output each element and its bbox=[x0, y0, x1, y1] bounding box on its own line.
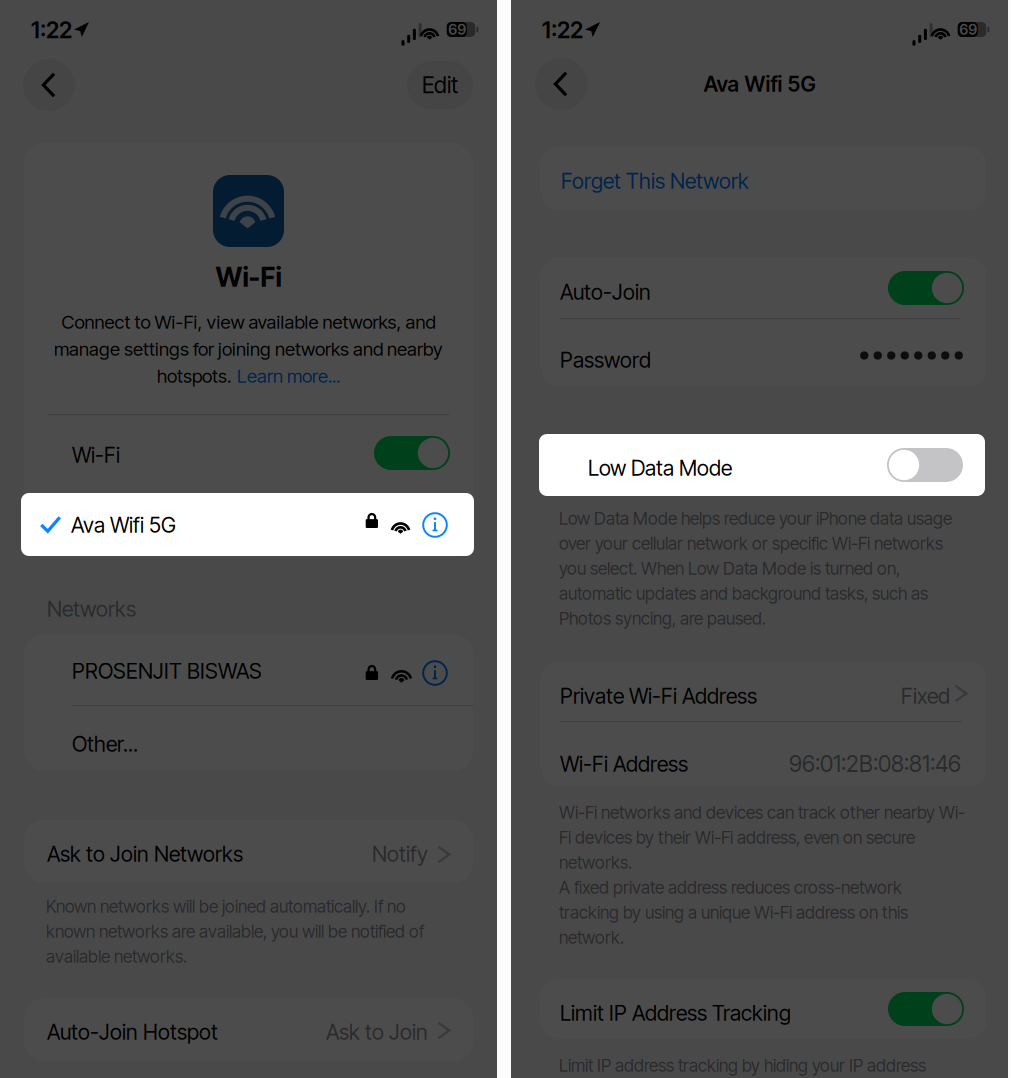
staticText: Learn more... bbox=[237, 365, 340, 387]
staticText: Private Wi-Fi Address bbox=[560, 683, 757, 709]
staticText: 1:22 bbox=[31, 16, 72, 44]
button[interactable]: Edit bbox=[407, 61, 473, 109]
staticText: 69 bbox=[959, 21, 977, 38]
staticText: 96:01:2B:08:81:46 bbox=[789, 750, 961, 777]
staticText: Wi-Fi bbox=[72, 442, 120, 468]
staticText: Notify bbox=[372, 841, 428, 867]
staticText: Forget This Network bbox=[561, 168, 749, 194]
button[interactable]: Back bbox=[535, 58, 587, 110]
staticText: Fixed bbox=[901, 683, 950, 709]
staticText: Wi-Fi networks and devices can track oth… bbox=[559, 802, 965, 873]
staticText: PROSENJIT BISWAS bbox=[72, 658, 262, 684]
staticText: Ask to Join Networks bbox=[47, 841, 243, 867]
staticText: Wi-Fi bbox=[215, 261, 281, 293]
staticText: Password bbox=[560, 347, 651, 373]
staticText: Ava Wifi 5G bbox=[71, 512, 176, 538]
staticText: Auto-Join bbox=[560, 279, 651, 305]
staticText: Other... bbox=[72, 731, 138, 757]
button[interactable]: Forget This Network bbox=[540, 146, 987, 210]
staticText: Networks bbox=[47, 596, 136, 622]
staticText: Ava Wifi 5G bbox=[703, 71, 815, 97]
staticText: Ask to Join bbox=[326, 1019, 428, 1045]
staticText: Limit IP Address Tracking bbox=[560, 1000, 791, 1026]
button[interactable]: Back bbox=[23, 59, 75, 111]
staticText: Wi-Fi Address bbox=[560, 751, 688, 777]
staticText: Auto-Join Hotspot bbox=[47, 1019, 218, 1045]
staticText: A fixed private address reduces cross-ne… bbox=[559, 877, 908, 948]
staticText: Connect to Wi-Fi, view available network… bbox=[61, 311, 435, 333]
staticText: hotspots. bbox=[157, 365, 231, 387]
staticText: 69 bbox=[448, 21, 466, 38]
staticText: Low Data Mode bbox=[588, 455, 732, 481]
staticText: 1:22 bbox=[542, 16, 583, 44]
staticText: manage settings for joining networks and… bbox=[54, 338, 443, 360]
staticText: Limit IP address tracking by hiding your… bbox=[559, 1055, 926, 1076]
staticText: Known networks will be joined automatica… bbox=[46, 896, 424, 967]
staticText: Edit bbox=[422, 71, 458, 99]
staticText: Low Data Mode helps reduce your iPhone d… bbox=[559, 508, 952, 629]
